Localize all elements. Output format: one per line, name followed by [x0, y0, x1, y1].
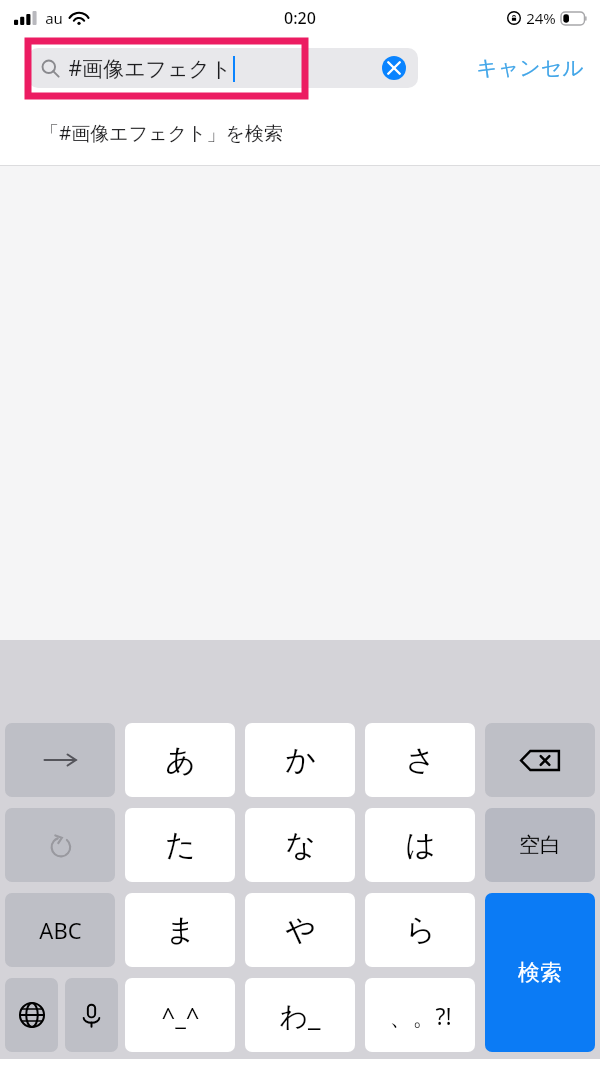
- button[interactable]: 、。?!: [365, 978, 475, 1052]
- staticText: au: [45, 8, 63, 28]
- button[interactable]: か: [245, 723, 355, 797]
- staticText: わ_: [279, 996, 321, 1034]
- button[interactable]: ま: [125, 893, 235, 967]
- staticText: た: [165, 826, 196, 864]
- staticText: ら: [405, 911, 436, 949]
- button[interactable]: Next: [5, 723, 115, 797]
- button[interactable]: 空白: [485, 808, 595, 882]
- button[interactable]: わ_: [245, 978, 355, 1052]
- staticText: は: [405, 826, 436, 864]
- staticText: や: [285, 911, 316, 949]
- button[interactable]: な: [245, 808, 355, 882]
- staticText: 検索: [518, 959, 562, 987]
- button[interactable]: Switch keyboard: [5, 978, 58, 1052]
- staticText: か: [285, 741, 316, 779]
- button[interactable]: Voice input: [65, 978, 118, 1052]
- staticText: あ: [165, 741, 196, 779]
- button[interactable]: ABC: [5, 893, 115, 967]
- staticText: 空白: [519, 832, 561, 858]
- staticText: ま: [165, 911, 196, 949]
- staticText: 24%: [526, 8, 556, 28]
- button[interactable]: や: [245, 893, 355, 967]
- button[interactable]: Clear text: [378, 52, 410, 84]
- staticText: な: [285, 826, 316, 864]
- button[interactable]: た: [125, 808, 235, 882]
- staticText: 、。?!: [389, 1000, 452, 1031]
- button[interactable]: 「#画像エフェクト」を検索: [0, 100, 600, 165]
- staticText: #画像エフェクト: [68, 54, 232, 83]
- staticText: 0:20: [284, 7, 316, 29]
- staticText: ABC: [39, 915, 82, 945]
- button[interactable]: さ: [365, 723, 475, 797]
- button[interactable]: 検索: [485, 893, 595, 1052]
- button[interactable]: は: [365, 808, 475, 882]
- button[interactable]: ^_^: [125, 978, 235, 1052]
- button[interactable]: キャンセル: [476, 55, 584, 81]
- button[interactable]: ら: [365, 893, 475, 967]
- staticText: さ: [405, 741, 436, 779]
- button[interactable]: Backspace: [485, 723, 595, 797]
- button[interactable]: Undo: [5, 808, 115, 882]
- button[interactable]: [28, 48, 418, 88]
- staticText: キャンセル: [476, 55, 584, 81]
- button[interactable]: あ: [125, 723, 235, 797]
- staticText: 「#画像エフェクト」を検索: [40, 120, 283, 146]
- staticText: ^_^: [161, 999, 200, 1032]
